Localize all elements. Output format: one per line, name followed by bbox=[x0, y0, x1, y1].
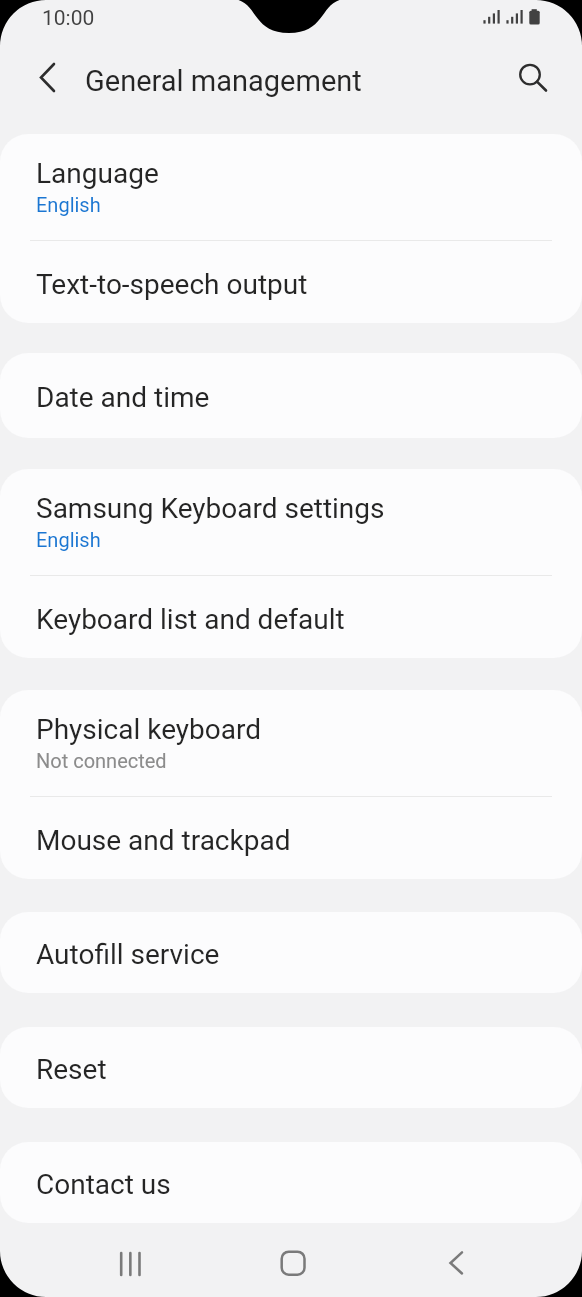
staticText: Not connected bbox=[36, 749, 167, 772]
button[interactable] bbox=[425, 1242, 485, 1286]
button[interactable] bbox=[263, 1242, 323, 1286]
button[interactable]: Samsung Keyboard settings bbox=[0, 469, 582, 575]
button[interactable]: Language bbox=[0, 134, 582, 240]
staticText: Date and time bbox=[36, 381, 210, 414]
button[interactable] bbox=[100, 1242, 160, 1286]
staticText: English bbox=[36, 193, 101, 216]
staticText: Reset bbox=[36, 1053, 107, 1086]
staticText: Samsung Keyboard settings bbox=[36, 492, 385, 525]
button[interactable]: Text-to-speech output bbox=[0, 241, 582, 323]
staticText: Keyboard list and default bbox=[36, 603, 345, 636]
staticText: Mouse and trackpad bbox=[36, 824, 291, 857]
button[interactable]: Mouse and trackpad bbox=[0, 797, 582, 879]
button[interactable]: Autofill service bbox=[0, 912, 582, 993]
staticText: General management bbox=[85, 64, 362, 98]
button[interactable] bbox=[510, 56, 556, 100]
staticText: Text-to-speech output bbox=[36, 268, 308, 301]
staticText: 10:00 bbox=[42, 6, 95, 31]
staticText: Language bbox=[36, 157, 159, 190]
staticText: English bbox=[36, 528, 101, 551]
staticText: Physical keyboard bbox=[36, 713, 262, 746]
button[interactable]: Reset bbox=[0, 1027, 582, 1108]
staticText: Autofill service bbox=[36, 938, 220, 971]
button[interactable]: Keyboard list and default bbox=[0, 576, 582, 658]
button[interactable] bbox=[28, 58, 68, 98]
button[interactable]: Physical keyboard bbox=[0, 690, 582, 796]
staticText: Contact us bbox=[36, 1168, 171, 1201]
button[interactable]: Date and time bbox=[0, 353, 582, 438]
button[interactable]: Contact us bbox=[0, 1142, 582, 1223]
